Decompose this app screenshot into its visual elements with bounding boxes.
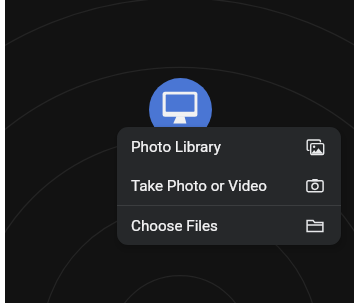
staticText: Choose Files — [131, 217, 218, 235]
button[interactable]: Take Photo or Video — [117, 166, 341, 205]
staticText: Photo Library — [131, 138, 221, 156]
staticText: Take Photo or Video — [131, 177, 267, 195]
button[interactable]: Computer — [149, 78, 212, 141]
button[interactable]: Choose Files — [117, 206, 341, 245]
button[interactable]: Photo Library — [117, 127, 341, 166]
